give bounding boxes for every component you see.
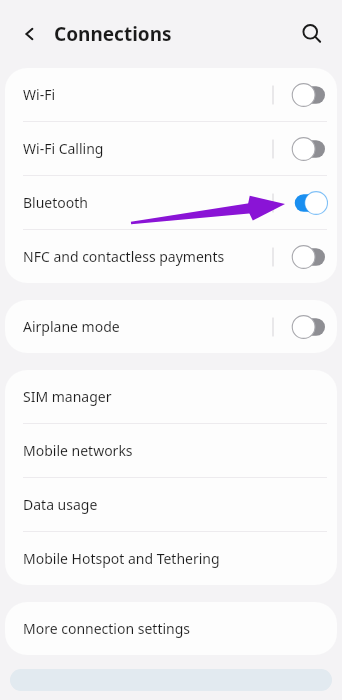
button[interactable]: Toggle off (271, 240, 327, 274)
staticText: Wi-Fi Calling (23, 139, 104, 158)
button[interactable]: Toggle off (271, 310, 327, 344)
staticText: Mobile networks (23, 441, 133, 460)
button[interactable]: Search (294, 16, 330, 52)
staticText: Data usage (23, 495, 98, 514)
button[interactable]: Wi-Fi (5, 68, 337, 121)
staticText: NFC and contactless payments (23, 247, 225, 266)
button[interactable]: Toggle off (271, 132, 327, 166)
staticText: More connection settings (23, 619, 191, 638)
button[interactable]: Airplane mode (5, 300, 337, 353)
button[interactable]: Toggle on (271, 186, 327, 220)
button[interactable]: Mobile Hotspot and Tethering (5, 532, 337, 585)
button[interactable]: Wi-Fi Calling (5, 122, 337, 175)
staticText: Connections (54, 21, 172, 47)
staticText: SIM manager (23, 387, 112, 406)
button[interactable]: Toggle off (271, 78, 327, 112)
button[interactable]: Data usage (5, 478, 337, 531)
staticText: Mobile Hotspot and Tethering (23, 549, 220, 568)
button[interactable]: Back (12, 16, 48, 52)
button[interactable]: Bluetooth (5, 176, 337, 229)
button[interactable]: More connection settings (5, 602, 337, 655)
button[interactable]: Mobile networks (5, 424, 337, 477)
staticText: Bluetooth (23, 193, 88, 212)
button[interactable]: NFC and contactless payments (5, 230, 337, 283)
button[interactable]: SIM manager (5, 370, 337, 423)
staticText: Airplane mode (23, 317, 120, 336)
staticText: Wi-Fi (23, 85, 56, 104)
